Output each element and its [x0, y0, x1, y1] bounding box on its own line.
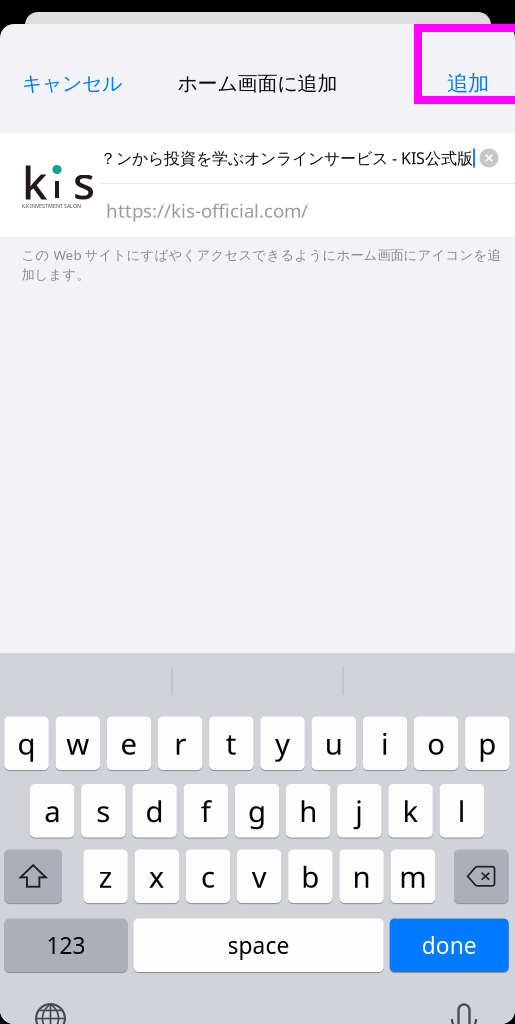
button[interactable]: o: [414, 716, 458, 770]
button[interactable]: Dictate: [450, 1001, 478, 1024]
staticText: 123: [46, 930, 85, 960]
staticText: r: [174, 724, 186, 763]
button[interactable]: u: [311, 716, 356, 770]
button[interactable]: Clear text: [475, 144, 503, 172]
button[interactable]: e: [107, 716, 151, 770]
button[interactable]: m: [390, 849, 435, 903]
button[interactable]: 追加: [413, 55, 515, 111]
button[interactable]: i: [363, 716, 407, 770]
staticText: K.K INVESTMENT SALON: [22, 202, 81, 210]
staticText: l: [458, 791, 466, 830]
button[interactable]: Delete: [454, 849, 508, 903]
button[interactable]: p: [465, 716, 510, 770]
button[interactable]: k: [388, 784, 433, 837]
staticText: k: [402, 791, 418, 830]
staticText: https://kis-official.com/: [106, 198, 308, 223]
button[interactable]: 123: [4, 918, 128, 972]
staticText: m: [399, 857, 426, 896]
staticText: c: [201, 857, 215, 896]
staticText: x: [149, 857, 165, 896]
button[interactable]: c: [186, 849, 230, 903]
staticText: p: [478, 724, 496, 763]
button[interactable]: v: [237, 849, 281, 903]
staticText: n: [353, 857, 371, 896]
button[interactable]: n: [339, 849, 384, 903]
staticText: a: [44, 791, 60, 830]
staticText: v: [252, 857, 267, 896]
button[interactable]: t: [209, 716, 254, 770]
button[interactable]: f: [183, 784, 228, 837]
button[interactable]: j: [337, 784, 382, 837]
button[interactable]: s: [81, 784, 126, 837]
button[interactable]: done: [390, 918, 509, 972]
button[interactable]: r: [158, 716, 202, 770]
button[interactable]: l: [439, 784, 484, 837]
button[interactable]: a: [30, 784, 74, 837]
button[interactable]: w: [55, 716, 100, 770]
staticText: o: [427, 724, 445, 763]
button[interactable]: d: [132, 784, 177, 837]
staticText: t: [226, 724, 237, 763]
staticText: f: [201, 791, 211, 830]
staticText: e: [120, 724, 137, 763]
staticText: u: [325, 724, 343, 763]
staticText: g: [248, 791, 266, 830]
staticText: w: [66, 724, 89, 763]
staticText: z: [98, 857, 112, 896]
staticText: q: [18, 724, 36, 763]
button[interactable]: q: [4, 716, 49, 770]
button[interactable]: g: [235, 784, 279, 837]
button[interactable]: y: [260, 716, 305, 770]
button[interactable]: x: [134, 849, 179, 903]
staticText: y: [275, 724, 290, 763]
staticText: s: [96, 791, 110, 830]
button[interactable]: キャンセル: [0, 55, 140, 111]
button[interactable]: space: [133, 918, 384, 972]
staticText: ？ンから投資を学ぶオンラインサービス - KIS公式版: [100, 147, 473, 169]
staticText: d: [146, 791, 164, 830]
staticText: j: [355, 791, 363, 830]
staticText: 加します。: [21, 267, 89, 283]
button[interactable]: b: [288, 849, 333, 903]
staticText: space: [228, 930, 290, 960]
staticText: この Web サイトにすばやくアクセスできるようにホーム画面にアイコンを追: [21, 246, 500, 264]
staticText: キャンセル: [22, 71, 122, 96]
staticText: i: [381, 724, 389, 763]
staticText: b: [301, 857, 319, 896]
staticText: 追加: [447, 70, 489, 97]
staticText: done: [422, 930, 477, 960]
button[interactable]: h: [286, 784, 330, 837]
button[interactable]: z: [83, 849, 128, 903]
button[interactable]: Next keyboard: [35, 1003, 66, 1024]
staticText: ホーム画面に追加: [177, 71, 337, 96]
button[interactable]: Shift: [4, 849, 62, 903]
staticText: h: [299, 791, 317, 830]
staticText: k: [22, 152, 47, 212]
staticText: s: [73, 152, 95, 212]
